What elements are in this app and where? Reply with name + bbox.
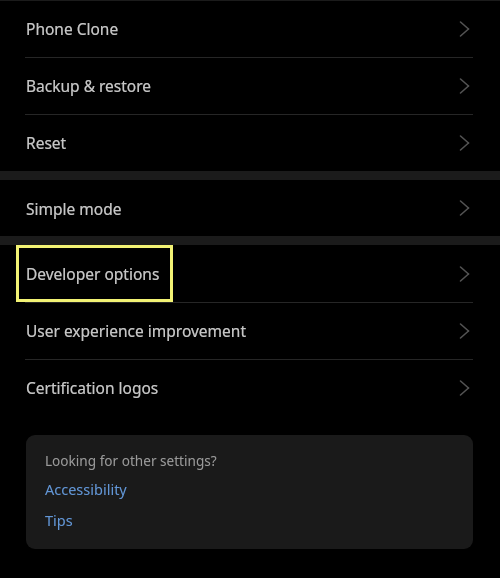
other: Open User experience improvement	[460, 323, 470, 339]
staticText: User experience improvement	[26, 320, 246, 341]
button[interactable]: Simple mode	[0, 180, 500, 236]
staticText: Developer options	[26, 263, 160, 284]
button[interactable]: Tips	[45, 510, 73, 530]
staticText: Certification logos	[26, 377, 159, 398]
button[interactable]: Phone Clone	[0, 0, 500, 57]
button[interactable]: Developer options	[0, 245, 500, 302]
other: Open Backup & restore	[460, 78, 470, 94]
other: Open Developer options	[460, 266, 470, 282]
staticText: Backup & restore	[26, 75, 152, 96]
staticText: Accessibility	[45, 479, 127, 499]
button[interactable]: Accessibility	[45, 479, 127, 499]
other: Open Certification logos	[460, 380, 470, 396]
button[interactable]: Reset	[0, 114, 500, 171]
staticText: Reset	[26, 132, 67, 153]
staticText: Looking for other settings?	[45, 451, 217, 470]
button[interactable]: Certification logos	[0, 359, 500, 416]
other: Open Simple mode	[460, 200, 470, 216]
button[interactable]: Backup & restore	[0, 57, 500, 114]
button[interactable]: User experience improvement	[0, 302, 500, 359]
staticText: Simple mode	[26, 198, 122, 219]
other: Open Reset	[460, 135, 470, 151]
other: Open Phone Clone	[460, 21, 470, 37]
staticText: Phone Clone	[26, 18, 119, 39]
staticText: Tips	[45, 510, 73, 530]
